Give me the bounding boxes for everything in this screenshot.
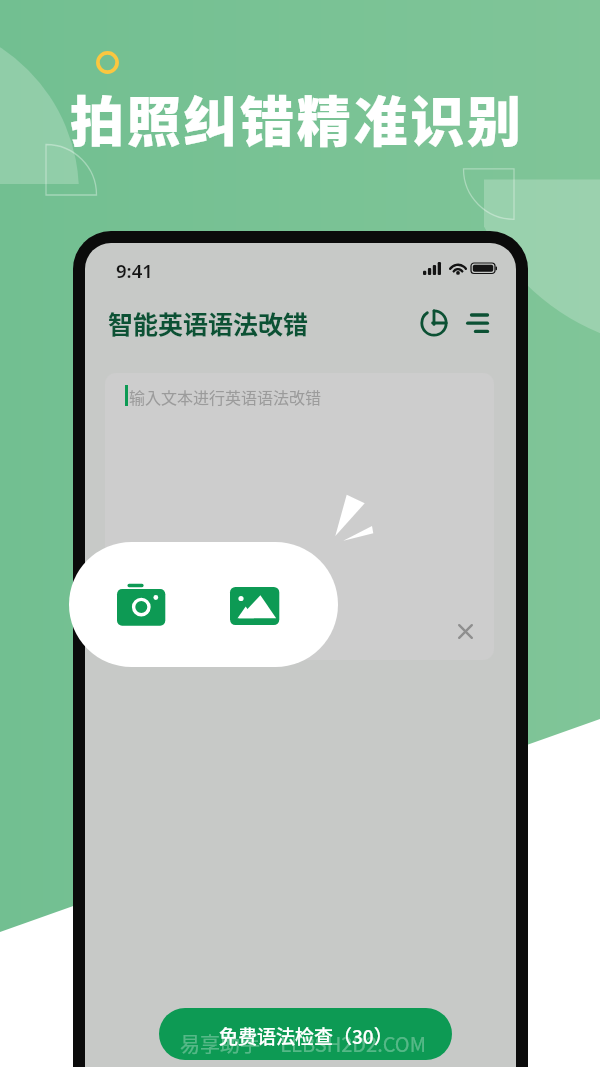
staticText: 免费语法检查（30） (219, 1022, 393, 1050)
button[interactable]: Clear text (449, 615, 481, 647)
button[interactable]: 输入文本进行英语语法改错 (105, 373, 494, 660)
staticText: 9:41 (116, 258, 153, 283)
staticText: 易享助手 · LLBSH2D2.COM (180, 1029, 426, 1058)
staticText: 拍照纠错精准识别 (70, 79, 524, 157)
button[interactable]: 免费语法检查（30） (159, 1008, 452, 1060)
button[interactable]: History (416, 305, 452, 341)
button[interactable]: Take photo (95, 566, 187, 642)
staticText: 智能英语语法改错 (108, 305, 309, 341)
button[interactable]: Choose image (209, 568, 301, 644)
button[interactable]: Menu (461, 305, 497, 341)
staticText: 输入文本进行英语语法改错 (129, 385, 322, 408)
